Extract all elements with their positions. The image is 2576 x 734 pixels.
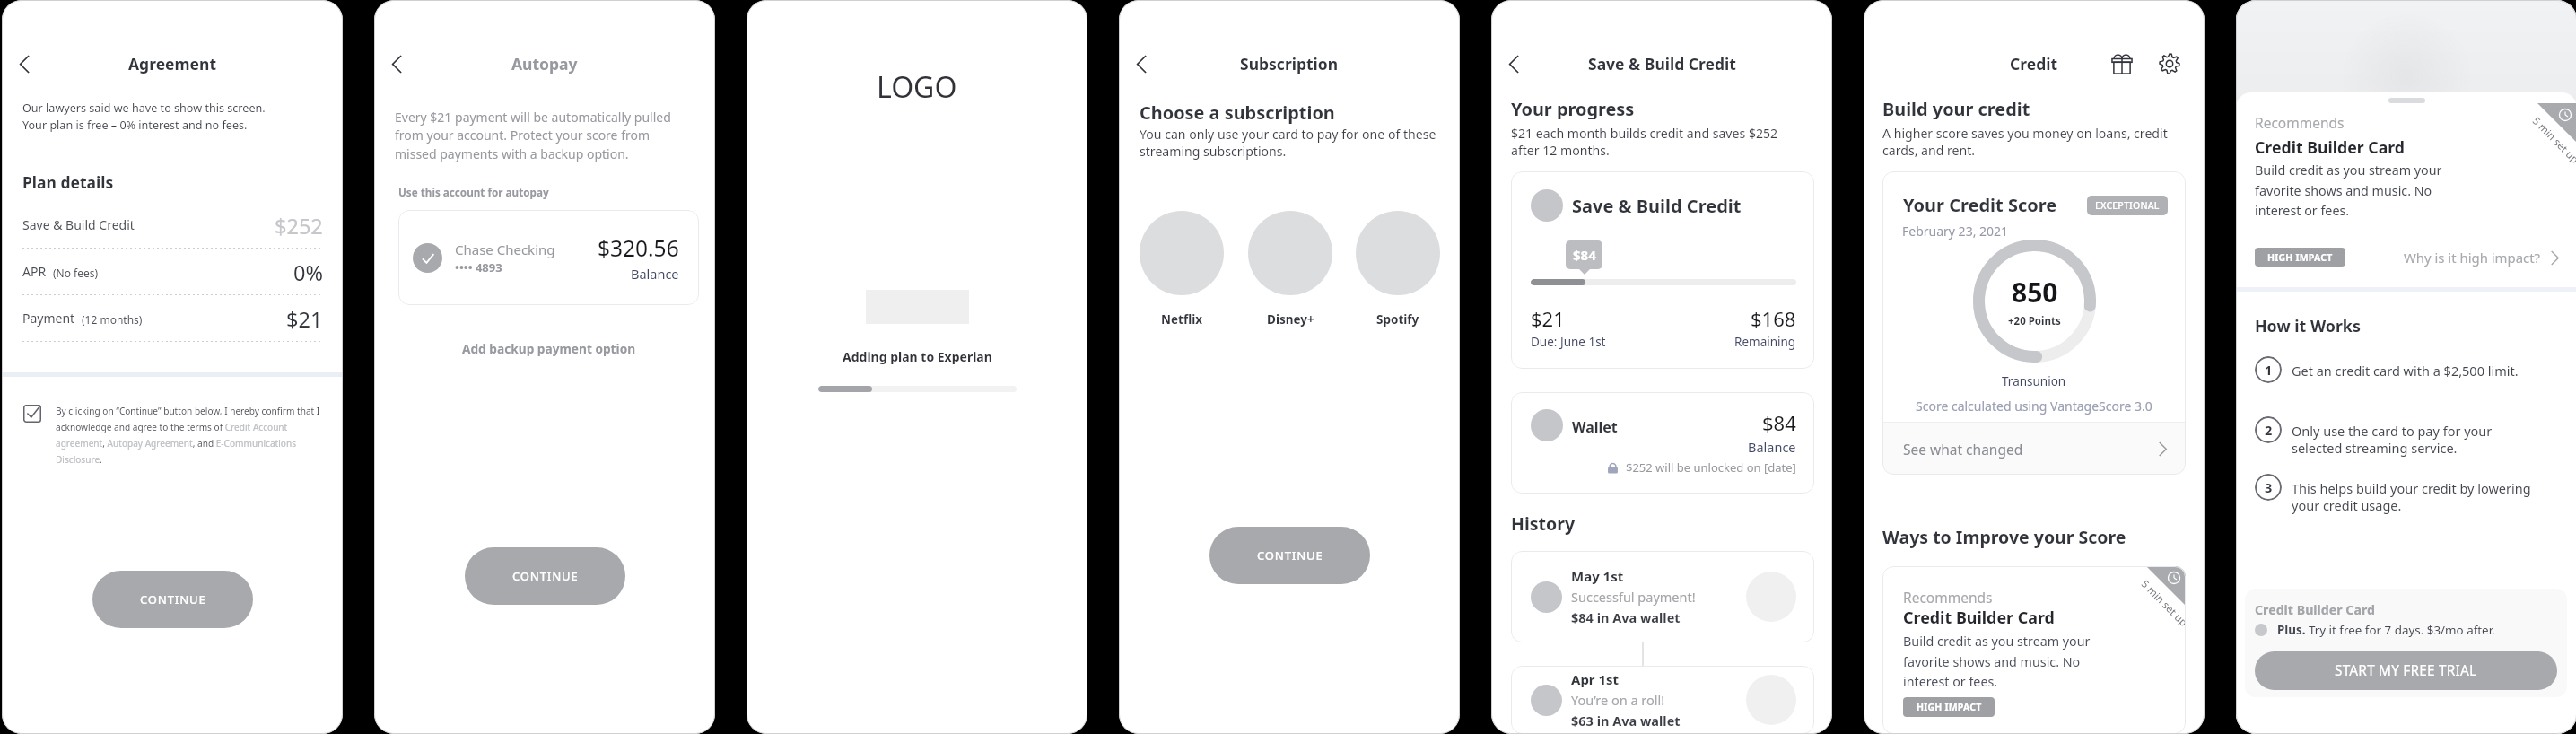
staticText: Apr 1st xyxy=(1571,670,1620,688)
staticText: LOGO xyxy=(877,67,957,107)
staticText: Payment xyxy=(22,310,75,327)
button[interactable]: Back xyxy=(9,48,39,79)
button[interactable]: Disney+ xyxy=(1248,211,1332,328)
staticText: Every $21 payment will be automatically … xyxy=(395,109,675,163)
button[interactable]: Spotify xyxy=(1356,211,1440,328)
staticText: HIGH IMPACT xyxy=(2267,251,2333,264)
staticText: (No fees) xyxy=(53,266,99,280)
staticText: Wallet xyxy=(1572,417,1618,437)
staticText: Your progress xyxy=(1511,97,1635,119)
staticText: History xyxy=(1511,511,1576,536)
staticText: Why is it high impact? xyxy=(2404,249,2540,267)
staticText: Chase Checking xyxy=(455,240,555,258)
staticText: Only use the card to pay for your select… xyxy=(2292,422,2532,458)
staticText: Remaining xyxy=(1734,334,1796,350)
button[interactable]: CONTINUE xyxy=(465,547,625,605)
staticText: A higher score saves you money on loans,… xyxy=(1882,125,2175,159)
staticText: $84 xyxy=(1762,409,1796,436)
button[interactable]: Back xyxy=(1126,48,1157,79)
staticText: Ways to Improve your Score xyxy=(1882,525,2126,549)
staticText: Recommends xyxy=(2255,113,2345,132)
staticText: Score calculated using VantageScore 3.0 xyxy=(1916,398,2152,415)
staticText: 1 xyxy=(2265,361,2273,379)
staticText: 5 min set up xyxy=(2529,114,2576,167)
button[interactable]: See what changed xyxy=(1882,423,2186,475)
staticText: +20 Points xyxy=(2008,314,2061,328)
button[interactable]: Why is it high impact? xyxy=(2404,249,2559,267)
staticText: Build credit as you stream your favorite… xyxy=(1903,633,2094,690)
staticText: HIGH IMPACT xyxy=(1917,701,1982,713)
staticText: $168 xyxy=(1751,305,1796,332)
staticText: Credit Builder Card xyxy=(1903,607,2055,628)
button[interactable]: CONTINUE xyxy=(1209,527,1370,584)
staticText: Build your credit xyxy=(1882,97,2030,119)
staticText: CONTINUE xyxy=(140,591,206,607)
staticText: Agreement xyxy=(128,53,217,74)
staticText: Plus. Try it free for 7 days. $3/mo afte… xyxy=(2277,622,2495,638)
staticText: Subscription xyxy=(1240,53,1339,74)
staticText: Adding plan to Experian xyxy=(843,348,992,365)
staticText: Autopay xyxy=(511,53,578,74)
staticText: (12 months) xyxy=(82,312,143,327)
staticText: $21 each month builds credit and saves $… xyxy=(1511,125,1789,159)
staticText: Get an credit card with a $2,500 limit. xyxy=(2292,362,2532,380)
button[interactable]: Settings xyxy=(2156,50,2183,77)
button[interactable]: Save & Build Credit xyxy=(1511,171,1814,369)
staticText: $252 will be unlocked on [date] xyxy=(1626,459,1796,476)
button[interactable]: May 1st xyxy=(1511,551,1814,642)
staticText: By clicking on “Continue” button below, … xyxy=(56,405,325,466)
button[interactable]: Chase Checking xyxy=(398,210,699,305)
staticText: CONTINUE xyxy=(512,568,579,584)
staticText: Choose a subscription xyxy=(1140,100,1335,125)
button[interactable]: Add backup payment option xyxy=(462,340,636,357)
staticText: Credit Builder Card xyxy=(2255,136,2405,158)
button[interactable]: Back xyxy=(381,48,412,79)
staticText: $63 in Ava wallet xyxy=(1571,712,1681,730)
staticText: CONTINUE xyxy=(1257,547,1323,564)
staticText: APR xyxy=(22,263,47,280)
staticText: Save & Build Credit xyxy=(22,216,135,233)
staticText: $320.56 xyxy=(598,233,679,263)
staticText: $252 xyxy=(275,212,323,240)
staticText: Netflix xyxy=(1161,311,1203,328)
staticText: •••• 4893 xyxy=(455,259,502,275)
staticText: Plan details xyxy=(22,171,114,193)
staticText: May 1st xyxy=(1571,567,1624,585)
button[interactable]: START MY FREE TRIAL xyxy=(2255,651,2557,690)
button[interactable]: Rewards xyxy=(2109,50,2135,77)
staticText: Credit xyxy=(2010,53,2058,74)
staticText: You can only use your card to pay for on… xyxy=(1140,126,1440,160)
staticText: Build credit as you stream your favorite… xyxy=(2255,162,2446,219)
button[interactable]: Wallet xyxy=(1511,392,1814,494)
staticText: 2 xyxy=(2265,421,2273,439)
staticText: $84 xyxy=(1573,246,1596,264)
staticText: Spotify xyxy=(1376,311,1419,328)
button[interactable]: CONTINUE xyxy=(92,571,253,628)
staticText: You’re on a roll! xyxy=(1571,691,1665,709)
staticText: 0% xyxy=(293,258,323,287)
staticText: $21 xyxy=(1531,305,1565,332)
staticText: Successful payment! xyxy=(1571,588,1696,606)
staticText: $21 xyxy=(286,305,323,334)
staticText: This helps build your credit by lowering… xyxy=(2292,479,2532,515)
staticText: START MY FREE TRIAL xyxy=(2335,661,2477,680)
button[interactable]: Apr 1st xyxy=(1511,666,1814,734)
button[interactable]: Netflix xyxy=(1140,211,1224,328)
staticText: 850 xyxy=(2012,274,2058,310)
staticText: Recommends xyxy=(1903,588,1993,607)
staticText: February 23, 2021 xyxy=(1902,223,2009,240)
button[interactable]: Recommends xyxy=(1882,566,2186,734)
staticText: $84 in Ava wallet xyxy=(1571,608,1681,626)
staticText: Balance xyxy=(1748,438,1796,456)
staticText: 5 min set up xyxy=(2138,577,2186,630)
staticText: 3 xyxy=(2265,478,2273,496)
staticText: Due: June 1st xyxy=(1531,334,1606,350)
staticText: Credit Builder Card xyxy=(2255,601,2375,618)
button[interactable]: Back xyxy=(1498,48,1529,79)
staticText: Your Credit Score xyxy=(1903,193,2057,217)
staticText: Save & Build Credit xyxy=(1588,53,1736,74)
staticText: Save & Build Credit xyxy=(1572,194,1742,218)
staticText: Balance xyxy=(631,265,679,283)
staticText: EXCEPTIONAL xyxy=(2095,199,2160,212)
staticText: Use this account for autopay xyxy=(398,185,549,199)
